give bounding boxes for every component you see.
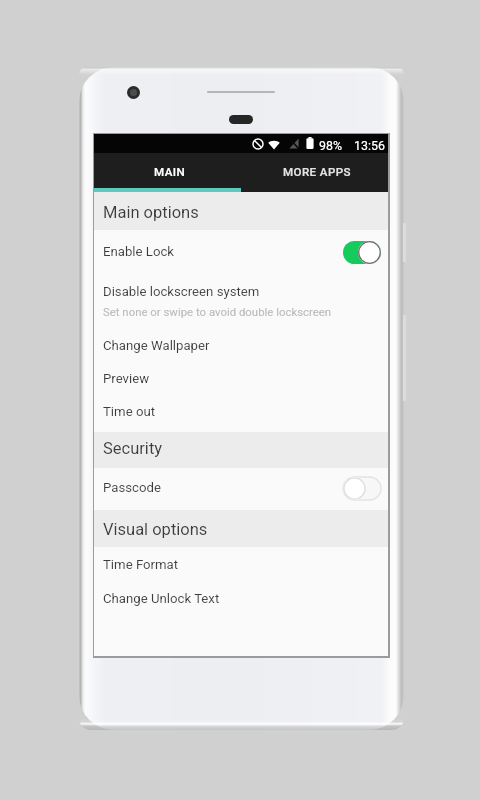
- other: Passcode, off: [343, 477, 381, 500]
- staticText: Enable Lock: [103, 244, 175, 259]
- other: Enable Lock, on: [343, 241, 381, 264]
- staticText: Time out: [103, 404, 156, 419]
- button[interactable]: Passcode: [94, 468, 388, 510]
- button[interactable]: Disable lockscreen system: [94, 278, 388, 332]
- button[interactable]: Preview: [94, 365, 388, 399]
- staticText: Main options: [103, 203, 199, 222]
- staticText: Change Unlock Text: [103, 591, 220, 606]
- staticText: Visual options: [103, 520, 208, 539]
- staticText: 13:56: [354, 138, 385, 153]
- button[interactable]: MAIN: [94, 153, 241, 188]
- staticText: Change Wallpaper: [103, 338, 210, 353]
- button[interactable]: Enable Lock: [94, 229, 388, 278]
- staticText: Time Format: [103, 557, 179, 572]
- staticText: Security: [103, 439, 163, 458]
- staticText: Set none or swipe to avoid double locksc…: [103, 305, 332, 318]
- button[interactable]: Change Unlock Text: [94, 580, 388, 614]
- staticText: Passcode: [103, 480, 161, 495]
- button[interactable]: Time out: [94, 398, 388, 432]
- staticText: MAIN: [154, 165, 186, 179]
- staticText: Preview: [103, 371, 150, 386]
- button[interactable]: Change Wallpaper: [94, 331, 388, 365]
- staticText: 98%: [319, 138, 343, 153]
- staticText: MORE APPS: [283, 165, 351, 179]
- button[interactable]: Time Format: [94, 546, 388, 580]
- staticText: Disable lockscreen system: [103, 284, 260, 299]
- button[interactable]: MORE APPS: [241, 153, 388, 188]
